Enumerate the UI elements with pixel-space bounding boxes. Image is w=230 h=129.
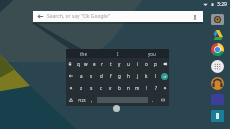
button[interactable]: All apps [211,60,224,73]
button[interactable]: a [76,70,86,82]
staticText: a [80,73,83,79]
staticText: I [117,51,119,57]
button[interactable]: c [96,82,106,94]
button[interactable]: Shift [160,82,169,94]
staticText: y [118,61,121,67]
staticText: 3:29 [217,1,227,8]
staticText: n [127,85,130,91]
button[interactable]: z [76,82,86,94]
button[interactable]: ! [142,82,151,94]
button[interactable]: v [106,82,115,94]
button[interactable]: l [151,70,160,82]
staticText: u [127,61,130,67]
staticText: ! [146,85,148,91]
button[interactable]: e [90,58,98,70]
staticText: k [145,73,148,79]
button[interactable]: i [133,58,142,70]
staticText: the [80,51,87,57]
button[interactable]: Caps lock [66,58,74,70]
button[interactable]: Chrome [211,43,224,56]
staticText: l [155,73,157,79]
staticText: w [84,61,88,67]
button[interactable]: h [124,70,133,82]
staticText: c [100,85,103,91]
staticText: z [80,85,83,91]
button[interactable]: s [86,70,96,82]
staticText: i [137,61,139,67]
button[interactable]: Backspace [160,58,169,70]
button[interactable]: . [149,94,157,106]
button[interactable]: d [96,70,106,82]
staticText: ?123 [78,98,86,103]
button[interactable]: x [86,82,96,94]
staticText: s [90,73,93,79]
other: Voice search [192,14,198,20]
staticText: t [110,61,112,67]
staticText: ? [155,85,157,91]
button[interactable]: Shift [66,82,76,94]
button[interactable]: Drive [211,28,224,41]
staticText: p [154,61,157,67]
staticText: x [90,85,93,91]
button[interactable]: Enter [160,70,169,82]
button[interactable]: App [211,110,224,122]
staticText: m [135,85,140,91]
button[interactable]: j [133,70,142,82]
button[interactable]: I [101,49,135,58]
button[interactable]: b [115,82,124,94]
button[interactable]: Camera [211,14,224,25]
button[interactable]: p [151,58,160,70]
button[interactable]: ? [151,82,160,94]
button[interactable]: you [135,49,169,58]
staticText: , [91,97,93,103]
button[interactable]: y [115,58,124,70]
button[interactable]: k [142,70,151,82]
button[interactable]: ?123 [75,94,88,106]
staticText: . [152,97,154,103]
button[interactable]: q [74,58,82,70]
staticText: b [118,85,121,91]
staticText: v [109,85,112,91]
staticText: e [93,61,96,67]
button[interactable]: n [124,82,133,94]
staticText: o [145,61,148,67]
staticText: Search, or say "Ok Google" [47,13,110,20]
other: Back [37,13,44,20]
staticText: g [118,73,121,79]
button[interactable]: u [124,58,133,70]
button[interactable]: w [82,58,90,70]
button[interactable]: t [106,58,115,70]
button[interactable]: the [66,49,101,58]
staticText: d [100,73,103,79]
button[interactable]: Tab [66,70,76,82]
button[interactable]: Back [33,11,203,22]
button[interactable]: App [211,94,224,105]
button[interactable]: Move keyboard [113,105,120,112]
button[interactable]: m [133,82,142,94]
button[interactable]: Play Music [211,77,224,90]
button[interactable]: r [98,58,106,70]
staticText: h [127,73,130,79]
button[interactable]: g [115,70,124,82]
staticText: you [148,51,156,57]
button[interactable]: o [142,58,151,70]
button[interactable]: Emoji [66,94,75,106]
staticText: r [101,61,103,67]
button[interactable]: f [106,70,115,82]
staticText: q [77,61,80,67]
staticText: j [137,73,139,79]
staticText: f [110,73,112,79]
button[interactable]: , [88,94,96,106]
button[interactable]: Images [157,94,169,106]
